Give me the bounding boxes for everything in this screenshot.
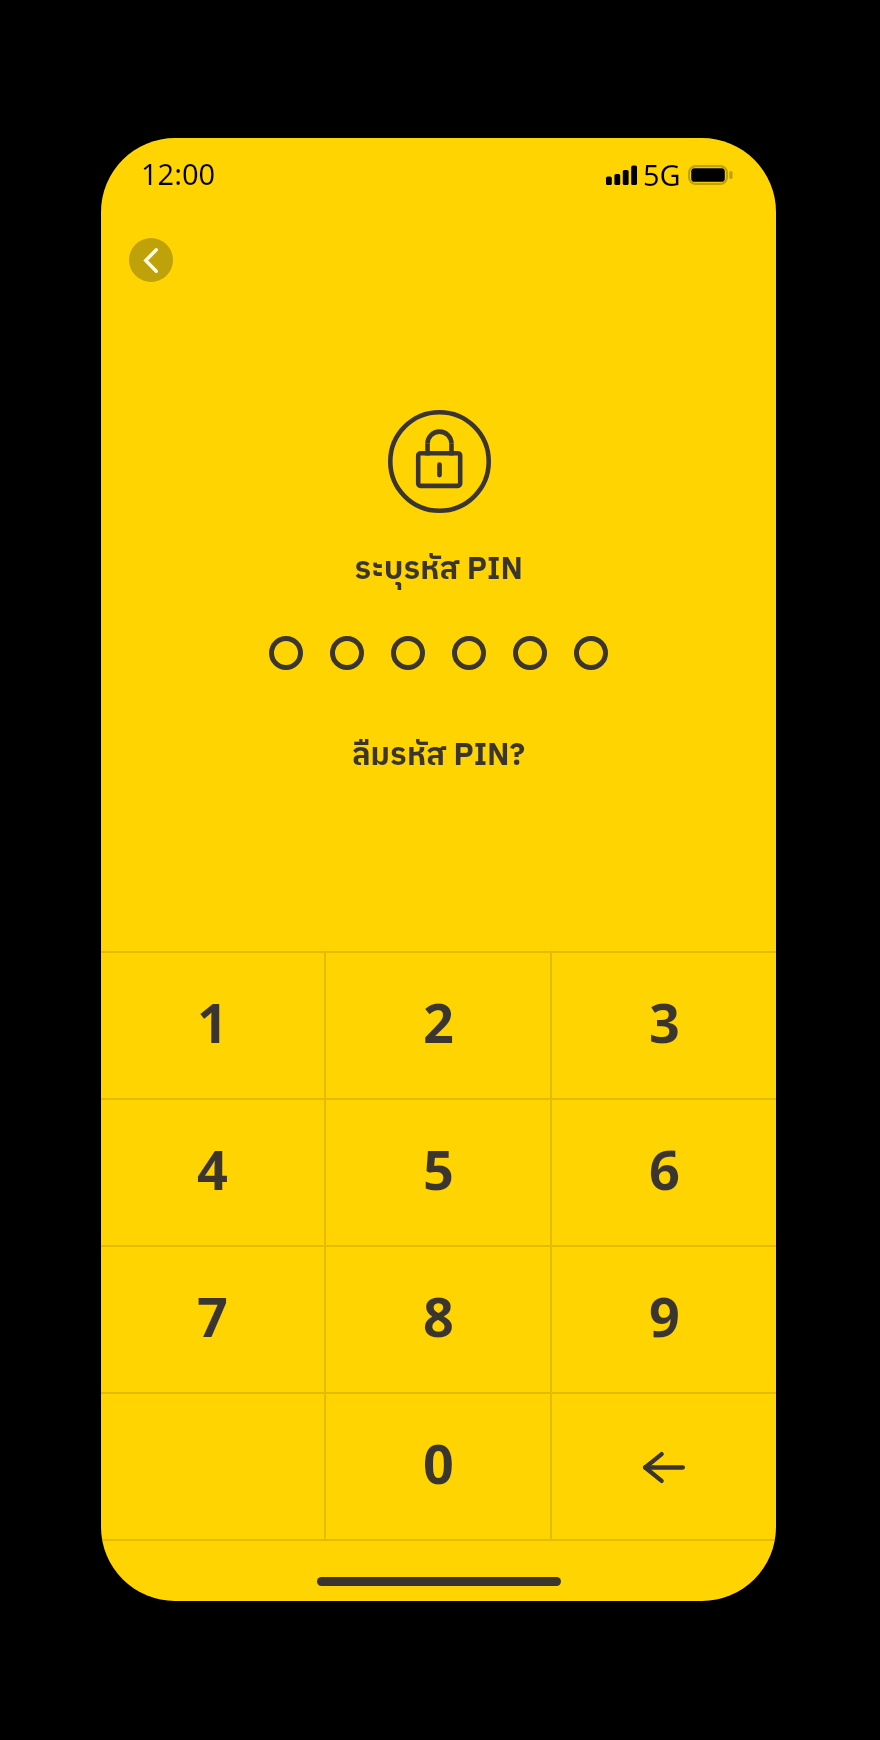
button[interactable]: 1 [101,953,324,1098]
button[interactable]: Back [129,238,173,282]
button[interactable]: Delete [552,1394,776,1539]
staticText: 12:00 [141,154,216,193]
button[interactable]: 7 [101,1247,324,1392]
button[interactable]: 3 [552,953,776,1098]
staticText: 5G [643,155,681,194]
staticText: 6 [649,1132,680,1206]
button[interactable]: 9 [552,1247,776,1392]
staticText: 4 [197,1132,228,1206]
button[interactable]: 4 [101,1100,324,1245]
staticText: 9 [649,1279,680,1353]
staticText: 7 [197,1279,228,1353]
button[interactable]: 0 [326,1394,550,1539]
staticText: 2 [423,985,454,1059]
staticText: 3 [649,985,680,1059]
staticText: 5 [423,1132,454,1206]
staticText: 8 [423,1279,454,1353]
staticText: ระบุรหัส PIN [101,544,776,595]
button[interactable]: ลืมรหัส PIN? [101,730,776,781]
staticText: 1 [197,985,228,1059]
button[interactable]: 2 [326,953,550,1098]
button[interactable]: 8 [326,1247,550,1392]
staticText: 0 [423,1426,454,1500]
button[interactable]: 5 [326,1100,550,1245]
other: Delete [629,1432,699,1502]
button[interactable]: 6 [552,1100,776,1245]
